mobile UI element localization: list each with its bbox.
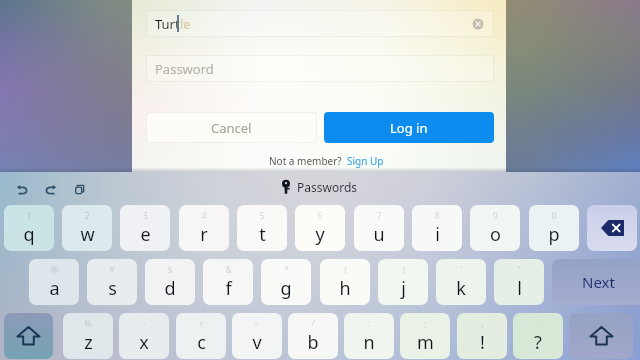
staticText: j [401, 276, 406, 301]
button[interactable]: 1 [4, 205, 54, 251]
button[interactable]: Redo [41, 180, 61, 199]
button[interactable]: Undo [12, 180, 32, 199]
staticText: Log in [390, 119, 428, 137]
staticText: w [80, 222, 95, 247]
button[interactable]: * [261, 259, 311, 305]
staticText: m [417, 330, 434, 355]
button[interactable]: 5 [237, 205, 287, 251]
staticText: Passwords [297, 179, 358, 195]
button[interactable]: % [63, 313, 113, 359]
button[interactable]: Clear text [472, 18, 484, 30]
button[interactable]: : [344, 313, 394, 359]
staticText: g [280, 276, 292, 301]
button[interactable]: 0 [529, 205, 579, 251]
staticText: " [517, 263, 521, 275]
button[interactable]: $ [145, 259, 195, 305]
staticText: ; [424, 317, 427, 329]
staticText: Password [155, 60, 214, 78]
staticText: * [284, 263, 289, 275]
button[interactable]: Sign Up [347, 154, 384, 168]
staticText: e [140, 222, 151, 247]
button[interactable]: # [87, 259, 137, 305]
staticText: h [339, 276, 351, 301]
button[interactable]: / [288, 313, 338, 359]
staticText: l [517, 276, 522, 301]
staticText: o [490, 222, 501, 247]
button[interactable]: Cancel [146, 112, 317, 143]
button[interactable]: Next [552, 259, 640, 305]
button[interactable]: ' [436, 259, 486, 305]
button[interactable]: " [494, 259, 544, 305]
staticText: 2 [84, 209, 90, 221]
staticText: Turt [155, 15, 180, 33]
button[interactable]: Password [146, 55, 494, 82]
staticText: le [180, 15, 191, 33]
button[interactable]: + [176, 313, 226, 359]
staticText: 7 [376, 209, 382, 221]
staticText: d [164, 276, 176, 301]
button[interactable]: 6 [295, 205, 345, 251]
button[interactable]: ( [320, 259, 370, 305]
button[interactable]: , [457, 313, 507, 359]
staticText: k [456, 276, 466, 301]
staticText: : [368, 317, 371, 329]
staticText: 3 [142, 209, 148, 221]
button[interactable]: = [232, 313, 282, 359]
staticText: f [225, 276, 232, 301]
button[interactable]: 8 [412, 205, 462, 251]
staticText: = [254, 317, 260, 329]
button[interactable]: Copy [71, 180, 89, 199]
staticText: 9 [492, 209, 498, 221]
button[interactable]: Log in [324, 112, 494, 143]
staticText: x [139, 330, 149, 355]
button[interactable]: 3 [120, 205, 170, 251]
staticText: ' [460, 263, 463, 275]
staticText: 0 [551, 209, 557, 221]
staticText: p [548, 222, 560, 247]
staticText: Not a member? [269, 154, 342, 168]
staticText: 1 [26, 209, 32, 221]
staticText: n [363, 330, 375, 355]
staticText: . [537, 317, 540, 329]
button[interactable]: ; [400, 313, 450, 359]
button[interactable]: . [513, 313, 563, 359]
staticText: ! [480, 330, 485, 355]
staticText: / [311, 317, 315, 329]
button[interactable]: @ [29, 259, 79, 305]
staticText: $ [167, 263, 173, 275]
staticText: + [198, 317, 204, 329]
button[interactable]: 4 [179, 205, 229, 251]
staticText: z [84, 330, 93, 355]
staticText: c [197, 330, 206, 355]
staticText: s [108, 276, 117, 301]
staticText: t [259, 222, 266, 247]
button[interactable]: 9 [470, 205, 520, 251]
staticText: u [373, 222, 385, 247]
button[interactable]: ) [378, 259, 428, 305]
staticText: ( [344, 263, 347, 275]
staticText: q [23, 222, 35, 247]
staticText: a [49, 276, 60, 301]
staticText: 5 [259, 209, 265, 221]
button[interactable]: Shift [569, 313, 633, 359]
staticText: & [225, 263, 232, 275]
button[interactable]: Backspace [587, 205, 637, 251]
staticText: Next [582, 272, 615, 292]
button[interactable]: - [119, 313, 169, 359]
staticText: 4 [201, 209, 207, 221]
button[interactable]: 2 [62, 205, 112, 251]
staticText: ? [534, 330, 542, 355]
button[interactable]: 7 [354, 205, 404, 251]
staticText: # [109, 263, 115, 275]
staticText: - [143, 317, 146, 329]
staticText: , [481, 317, 484, 329]
button[interactable]: Turt [146, 10, 494, 37]
staticText: Cancel [211, 119, 252, 137]
button[interactable]: & [203, 259, 253, 305]
staticText: % [84, 317, 92, 329]
staticText: 6 [317, 209, 323, 221]
staticText: @ [50, 263, 59, 275]
button[interactable]: Shift [4, 313, 53, 359]
staticText: ) [402, 263, 405, 275]
staticText: r [200, 222, 208, 247]
